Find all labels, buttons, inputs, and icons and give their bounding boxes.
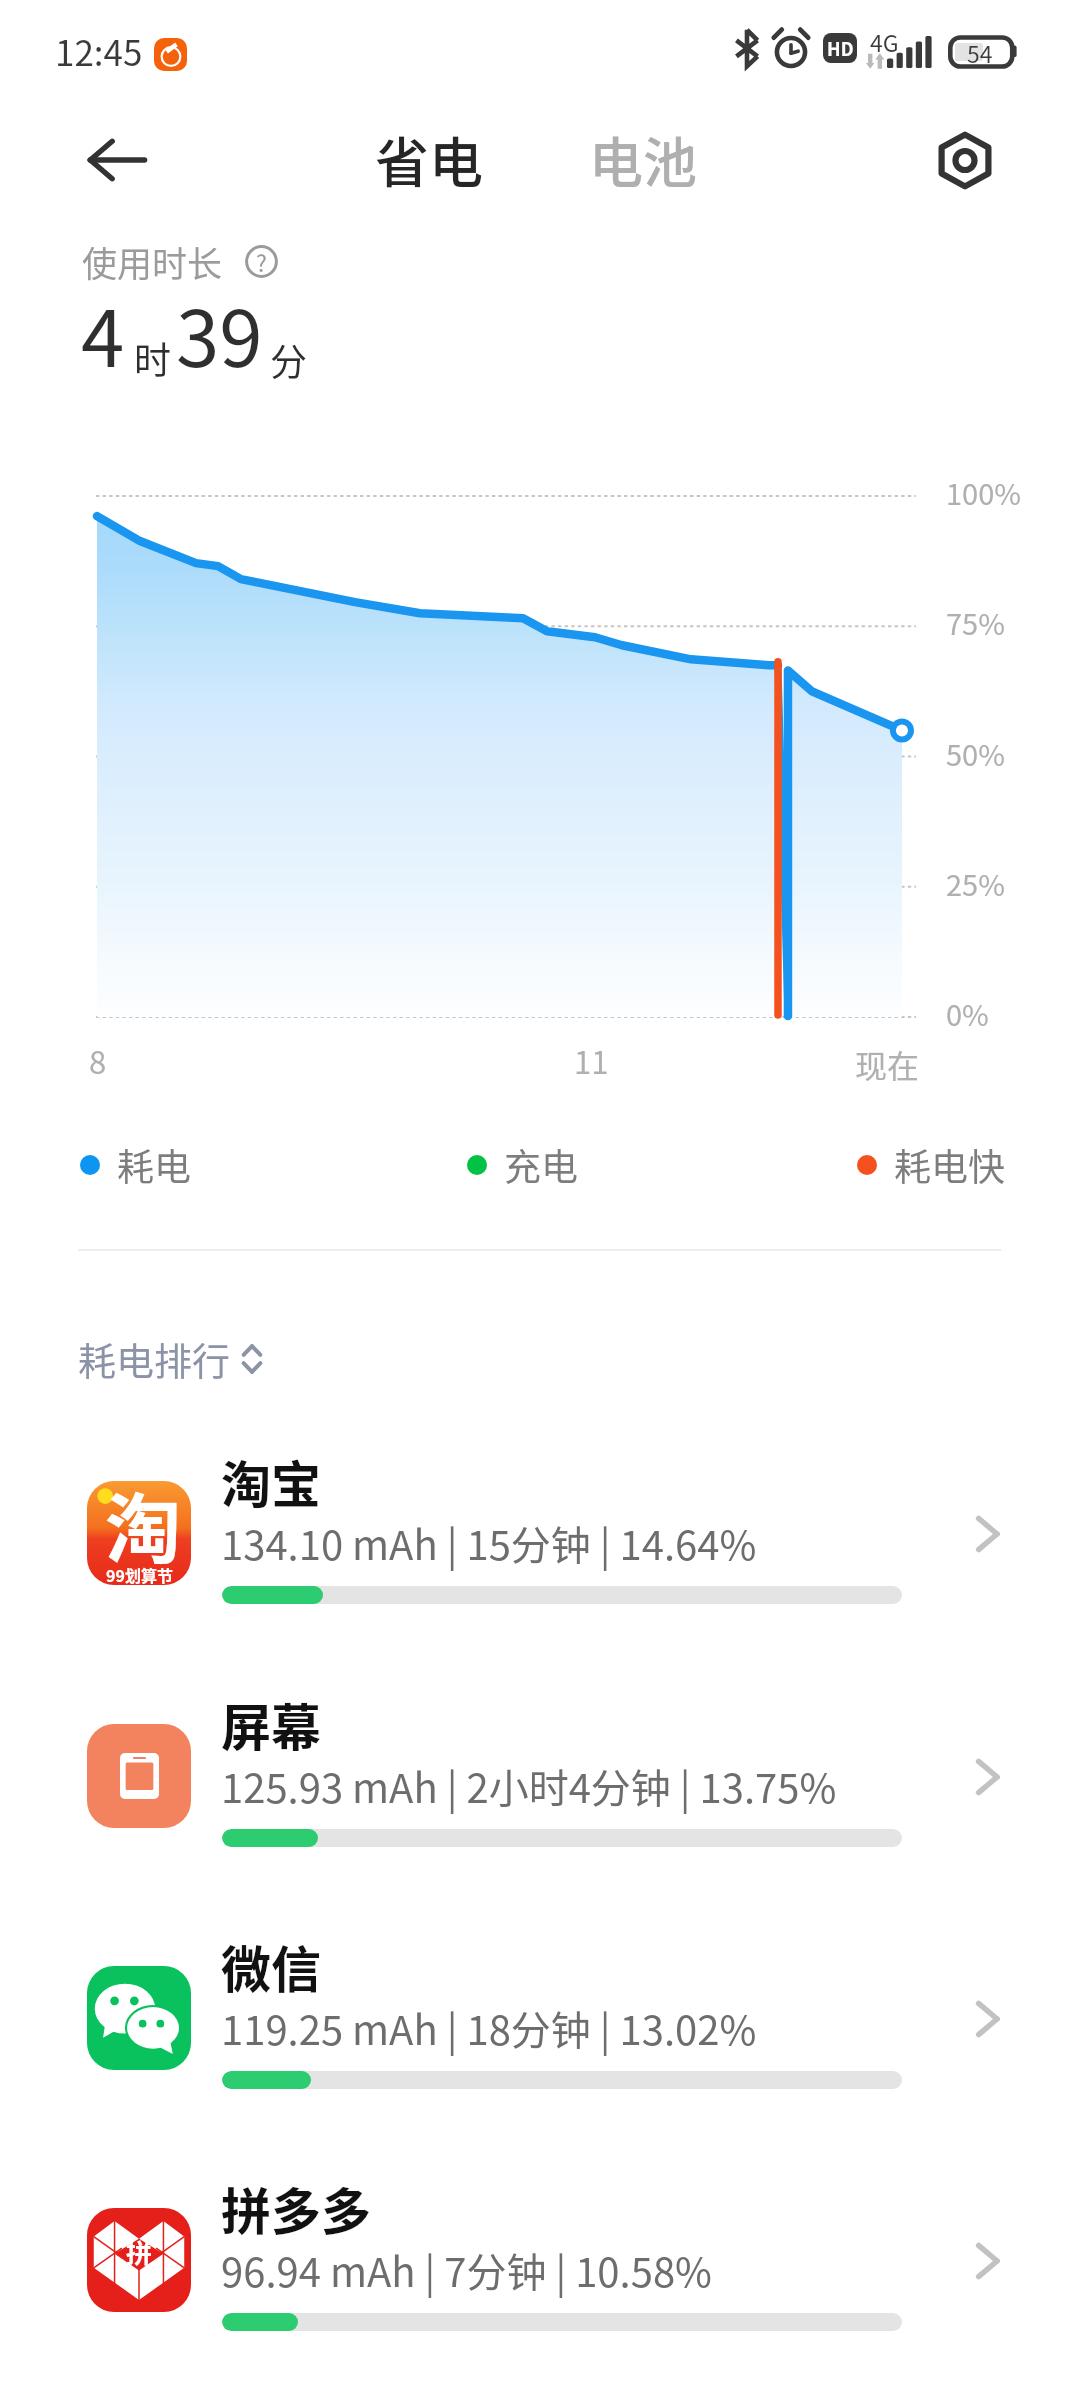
staticText: 时 <box>134 331 171 385</box>
staticText: 99划算节 <box>106 1563 173 1585</box>
staticText: 耗电 <box>117 1138 191 1192</box>
button[interactable]: 耗电 <box>66 1138 205 1192</box>
button[interactable]: 耗电快 <box>843 1138 1019 1192</box>
staticText: 125.93 mAh | 2小时4分钟 | 13.75% <box>221 1757 837 1815</box>
button[interactable]: Settings <box>926 121 1004 199</box>
staticText: 省电 <box>375 120 483 198</box>
button[interactable]: 屏幕 <box>0 1693 1080 1923</box>
staticText: 使用时长 <box>82 236 223 287</box>
staticText: 8 <box>89 1038 107 1083</box>
staticText: 11 <box>574 1038 609 1083</box>
button[interactable]: 省电 <box>375 120 483 198</box>
staticText: 拼 <box>126 2233 153 2271</box>
button[interactable]: 耗电排行 <box>78 1331 262 1386</box>
staticText: 134.10 mAh | 15分钟 | 14.64% <box>221 1514 757 1572</box>
staticText: 54 <box>967 36 993 68</box>
button[interactable]: Back <box>77 120 157 200</box>
staticText: 50% <box>946 732 1005 774</box>
staticText: 淘 <box>105 1481 181 1573</box>
staticText: 现在 <box>855 1041 920 1087</box>
button[interactable]: 电池 <box>589 120 697 198</box>
staticText: 12:45 <box>55 25 143 76</box>
staticText: 耗电快 <box>894 1138 1005 1192</box>
staticText: 4 <box>81 277 125 390</box>
staticText: 96.94 mAh | 7分钟 | 10.58% <box>221 2241 712 2299</box>
staticText: 100% <box>946 471 1021 513</box>
staticText: 25% <box>946 862 1005 904</box>
staticText: 0% <box>946 992 989 1034</box>
button[interactable]: 微信 <box>0 1935 1080 2165</box>
staticText: 119.25 mAh | 18分钟 | 13.02% <box>221 1999 757 2057</box>
staticText: ? <box>256 245 267 278</box>
staticText: 微信 <box>221 1930 321 2002</box>
staticText: HD <box>827 35 854 61</box>
staticText: 拼多多 <box>221 2172 371 2244</box>
button[interactable]: Help <box>245 245 278 278</box>
button[interactable]: 充电 <box>453 1138 592 1192</box>
staticText: 4G <box>870 25 899 58</box>
staticText: 屏幕 <box>221 1688 321 1760</box>
staticText: 充电 <box>504 1138 578 1192</box>
staticText: 电池 <box>589 120 697 198</box>
staticText: 淘宝 <box>221 1445 321 1517</box>
staticText: 分 <box>270 333 307 387</box>
staticText: 75% <box>946 601 1005 643</box>
staticText: 39 <box>176 277 263 390</box>
button[interactable]: 淘 <box>0 1450 1080 1680</box>
button[interactable]: 拼 <box>0 2177 1080 2400</box>
staticText: 耗电排行 <box>78 1331 231 1386</box>
